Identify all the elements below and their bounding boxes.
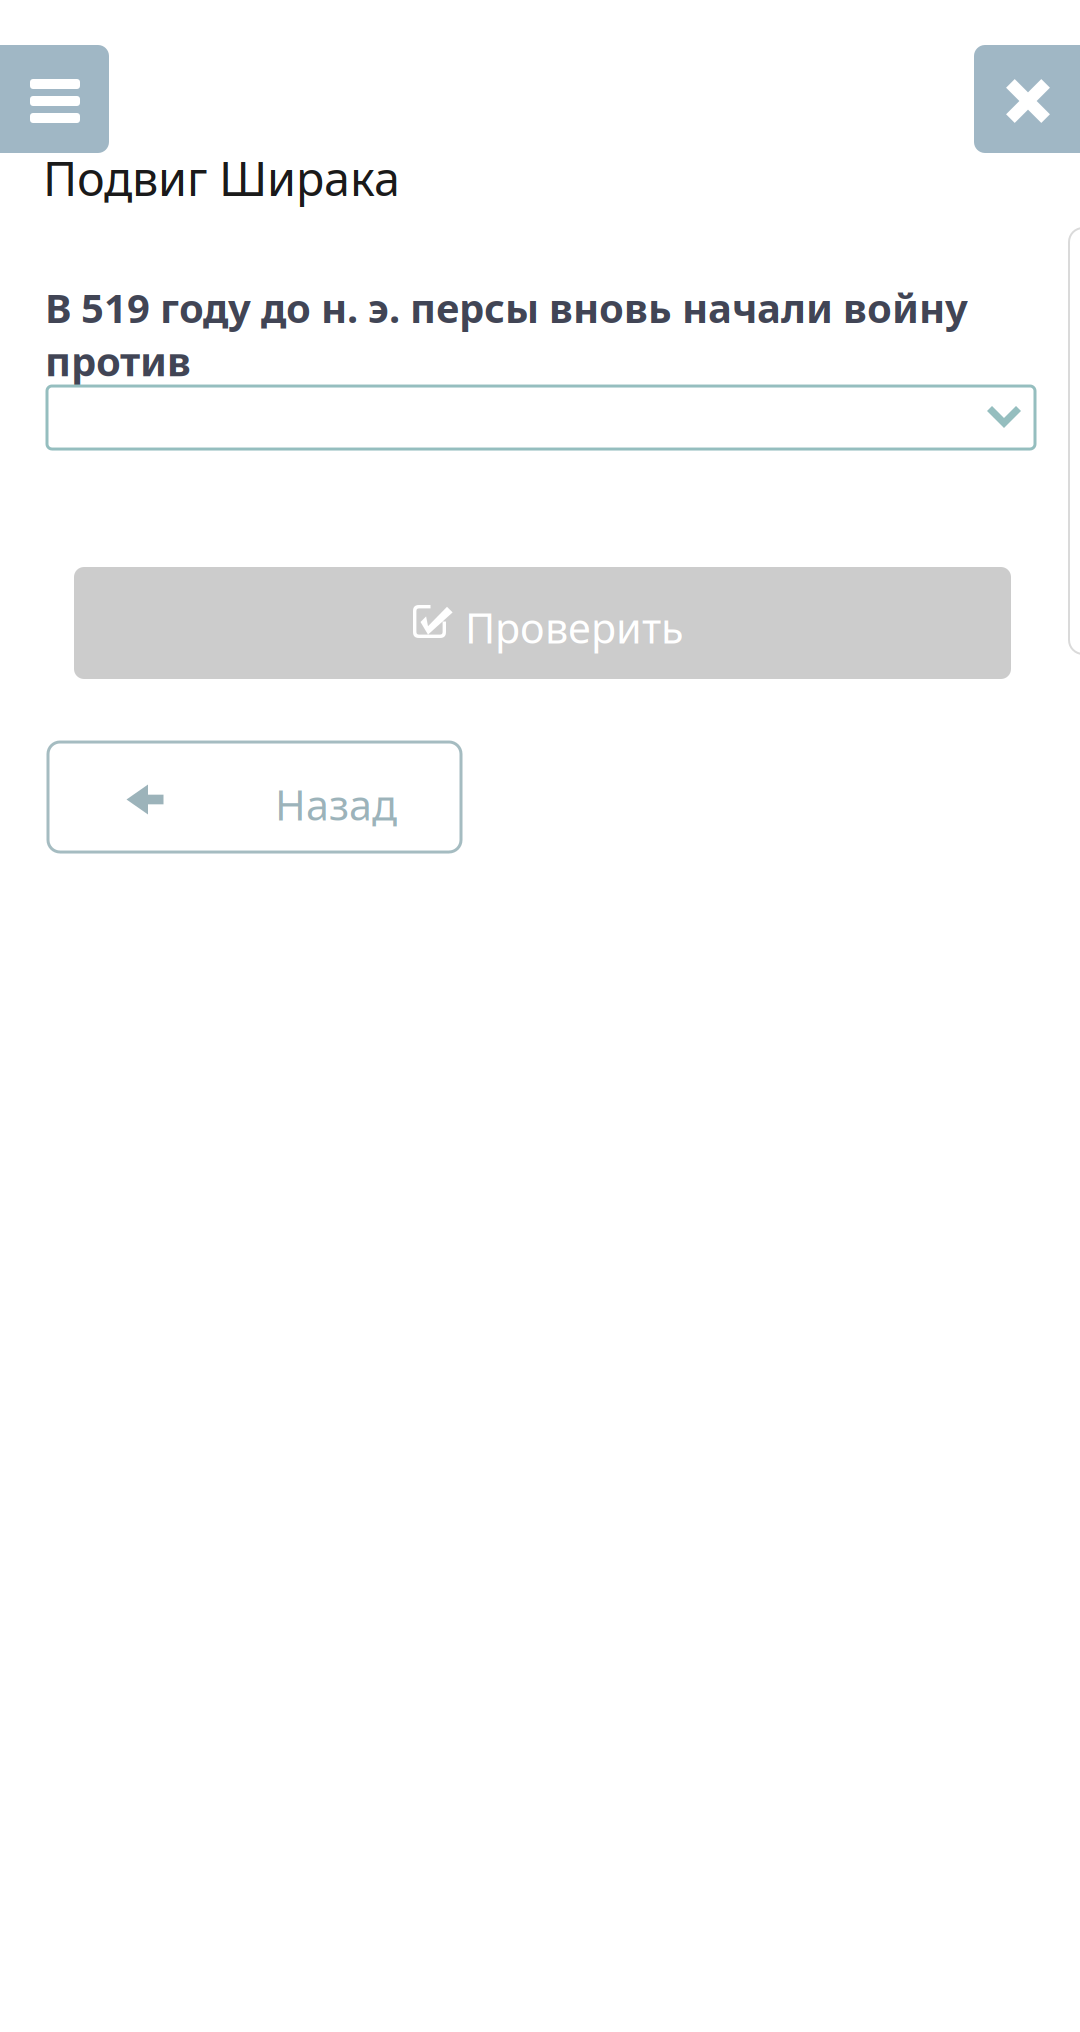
button[interactable]: Назад <box>48 742 461 852</box>
button[interactable]: Menu <box>0 45 109 153</box>
staticText: Подвиг Ширака <box>43 147 400 209</box>
button[interactable]: Проверить <box>74 567 1011 679</box>
button[interactable]: Close <box>974 45 1080 153</box>
staticText: В 519 году до н. э. персы вновь начали в… <box>45 281 968 387</box>
staticText: Назад <box>275 777 397 832</box>
button[interactable]: Choose an answer <box>47 386 1035 449</box>
staticText: Проверить <box>465 600 684 655</box>
